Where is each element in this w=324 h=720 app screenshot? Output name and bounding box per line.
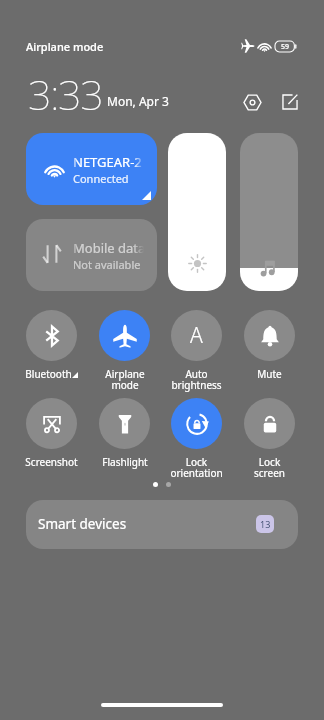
staticText: Lock screen — [254, 455, 285, 480]
button[interactable]: Mute — [234, 310, 305, 381]
button[interactable]: Volume — [240, 133, 298, 291]
staticText: Auto brightness — [171, 367, 222, 392]
staticText: Airplane mode — [105, 367, 145, 392]
button[interactable]: Mobile data — [26, 219, 157, 291]
staticText: Lock orientation — [170, 455, 223, 480]
button[interactable]: Edit — [277, 89, 303, 115]
button[interactable]: Screenshot — [16, 398, 87, 469]
staticText: Mute — [257, 367, 282, 381]
button[interactable]: Bluetooth — [16, 310, 87, 381]
button[interactable]: Lock orientation — [161, 398, 232, 480]
button[interactable]: Airplane mode — [89, 310, 160, 392]
button[interactable]: Settings — [239, 89, 265, 115]
staticText: 3:33 — [28, 66, 103, 122]
button[interactable]: Flashlight — [89, 398, 160, 469]
staticText: A — [190, 321, 203, 350]
button[interactable]: Lock screen — [234, 398, 305, 480]
button[interactable]: Smart devices — [26, 500, 298, 549]
button[interactable]: Brightness — [168, 133, 226, 291]
button[interactable]: A — [161, 310, 232, 392]
staticText: Screenshot — [25, 455, 78, 469]
staticText: Mon, Apr 3 — [107, 93, 169, 109]
staticText: Airplane mode — [26, 39, 104, 54]
staticText: Bluetooth — [25, 367, 72, 381]
staticText: Mobile data — [73, 239, 146, 255]
staticText: Not available — [73, 257, 141, 272]
staticText: NETGEAR-2 — [73, 153, 142, 169]
staticText: Connected — [73, 171, 129, 186]
staticText: Flashlight — [102, 455, 148, 469]
button[interactable]: NETGEAR-2 — [26, 133, 157, 205]
staticText: Smart devices — [38, 515, 127, 533]
staticText: 59 — [281, 42, 290, 52]
staticText: 13 — [260, 518, 271, 530]
